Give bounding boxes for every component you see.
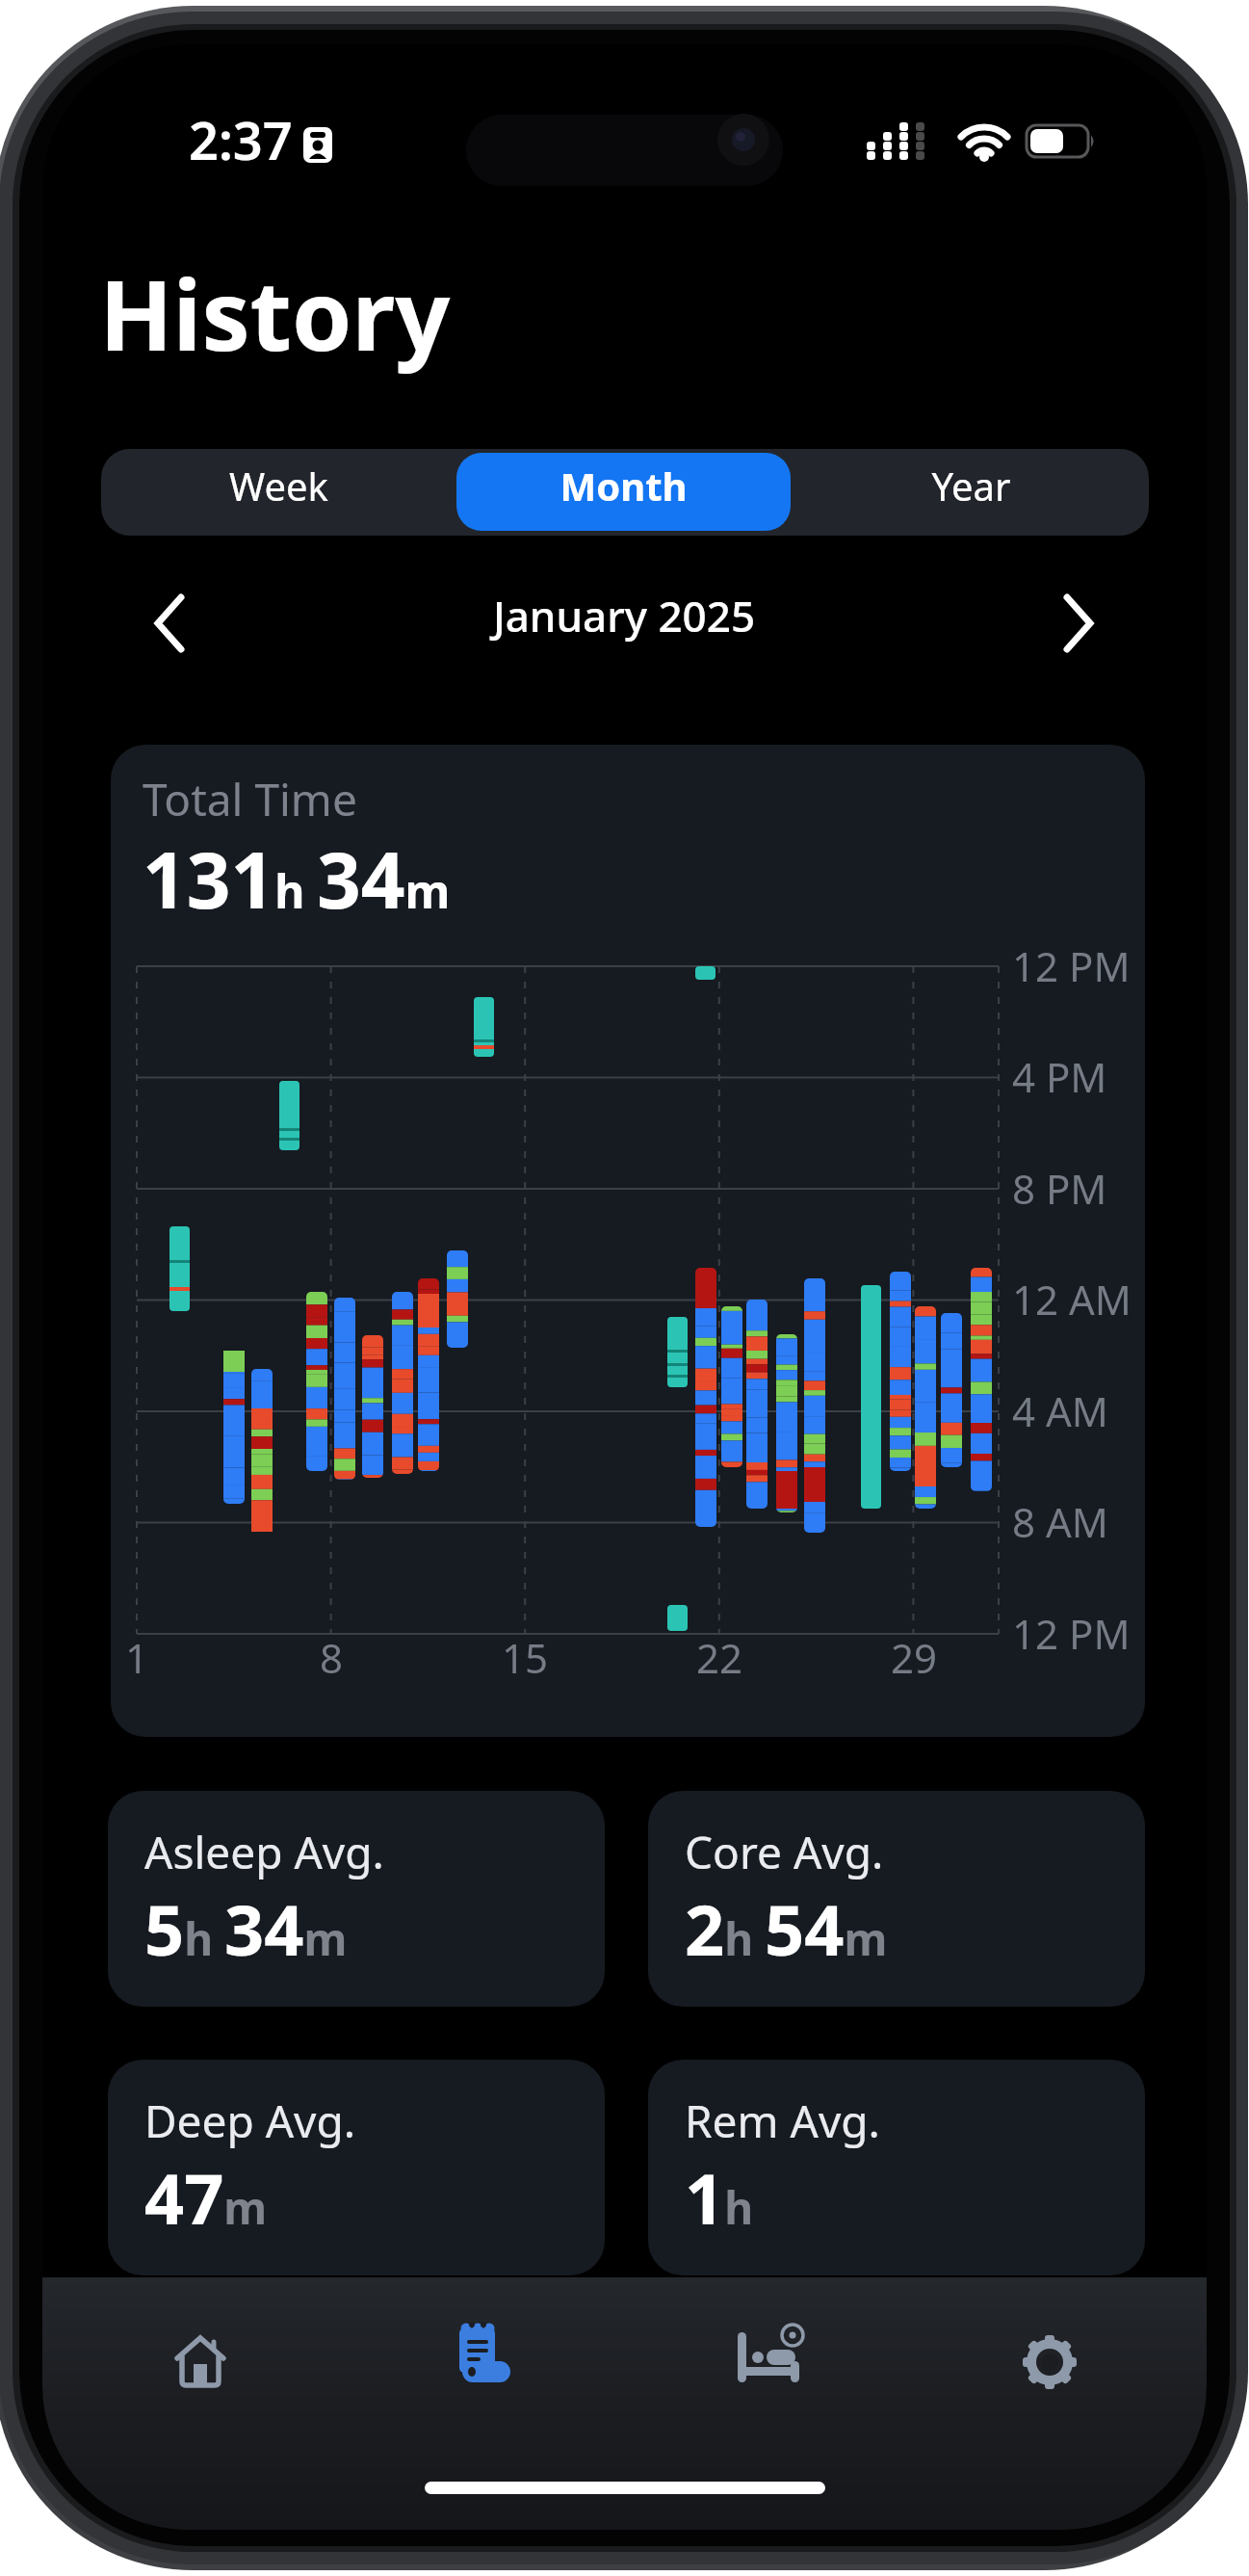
staticText: 12 PM [1012, 938, 1131, 993]
button[interactable] [456, 453, 791, 531]
button[interactable] [101, 449, 456, 536]
staticText: Asleep Avg. [144, 1822, 384, 1882]
button[interactable]: Rem Avg. [648, 2060, 1145, 2275]
staticText: Core Avg. [685, 1822, 884, 1882]
button[interactable] [303, 127, 336, 164]
staticText: 4 PM [1012, 1049, 1107, 1104]
staticText: 131h 34m [143, 826, 451, 931]
button[interactable] [624, 2289, 915, 2482]
staticText: Month [456, 460, 791, 512]
button[interactable]: Deep Avg. [108, 2060, 605, 2275]
staticText: January 2025 [431, 587, 817, 644]
staticText: 8 PM [1012, 1161, 1107, 1216]
staticText: Week [101, 460, 456, 512]
staticText: 1h [685, 2150, 754, 2245]
button[interactable] [150, 593, 189, 653]
button[interactable] [738, 2325, 807, 2388]
staticText: 47m [144, 2150, 268, 2245]
staticText: 12 AM [1012, 1272, 1132, 1327]
button[interactable]: Asleep Avg. [108, 1791, 605, 2007]
staticText: Year [794, 460, 1149, 512]
staticText: 8 [293, 1630, 370, 1685]
staticText: 2h 54m [685, 1881, 888, 1976]
button[interactable] [915, 2289, 1207, 2482]
staticText: Deep Avg. [144, 2090, 356, 2151]
staticText: 29 [875, 1630, 952, 1685]
staticText: 5h 34m [144, 1881, 348, 1976]
staticText: 1 [111, 1630, 175, 1685]
button[interactable] [794, 449, 1149, 536]
staticText: 4 AM [1012, 1383, 1108, 1438]
staticText: 15 [486, 1630, 563, 1685]
staticText: 12 PM [1012, 1606, 1131, 1661]
button[interactable] [171, 2333, 229, 2389]
staticText: 22 [681, 1630, 758, 1685]
button[interactable] [459, 2325, 521, 2382]
staticText: Total Time [143, 769, 357, 829]
button[interactable] [333, 2289, 624, 2482]
button[interactable] [42, 2289, 333, 2482]
staticText: 2:37 [189, 104, 293, 175]
staticText: 8 AM [1012, 1494, 1108, 1549]
staticText: History [99, 248, 451, 379]
button[interactable] [1021, 2333, 1079, 2391]
staticText: Rem Avg. [685, 2090, 880, 2151]
button[interactable]: Core Avg. [648, 1791, 1145, 2007]
button[interactable] [1059, 593, 1098, 653]
